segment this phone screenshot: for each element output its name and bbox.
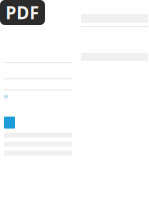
button[interactable]: PDF xyxy=(0,0,45,25)
staticText: PDF xyxy=(5,1,39,24)
